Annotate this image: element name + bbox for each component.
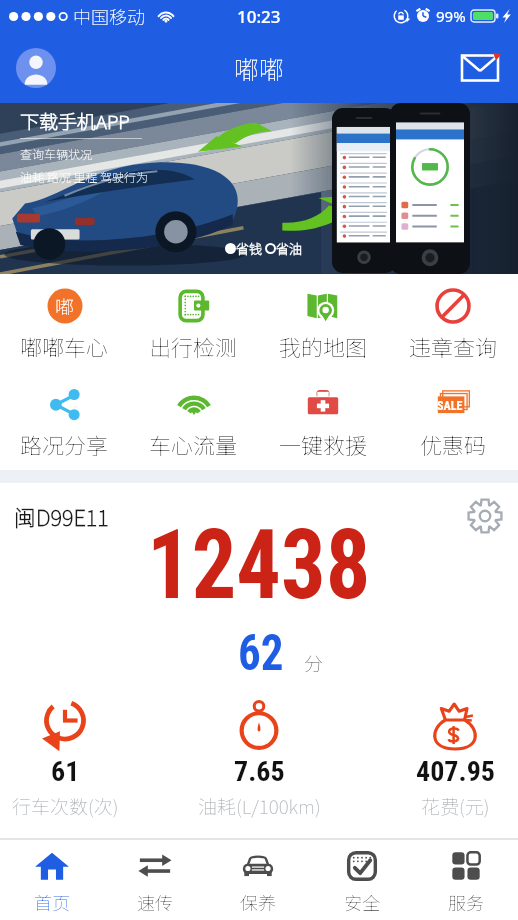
staticText: 服务 <box>448 889 484 915</box>
button[interactable]: 出行检测 <box>129 274 258 372</box>
staticText: 61 <box>51 755 80 788</box>
staticText: 62 <box>238 624 284 683</box>
button[interactable]: 首页 <box>0 840 103 920</box>
button[interactable]: 我的地图 <box>258 274 388 372</box>
button[interactable]: 路况分享 <box>0 372 129 470</box>
button[interactable]: Profile <box>16 48 56 88</box>
staticText: 查询车辆状况 <box>20 145 93 162</box>
staticText: SALE <box>437 399 463 413</box>
staticText: 7.65 <box>234 755 285 788</box>
staticText: 省钱 <box>236 239 263 258</box>
staticText: 违章查询 <box>409 330 498 362</box>
button[interactable]: 407.95 <box>375 697 518 820</box>
staticText: 嘟 <box>55 292 75 320</box>
button[interactable]: SALE <box>388 372 518 470</box>
button[interactable]: 嘟 <box>0 274 129 372</box>
button[interactable]: 安全 <box>310 840 414 920</box>
staticText: 安全 <box>344 889 380 915</box>
staticText: 12438 <box>147 508 371 622</box>
staticText: 99% <box>436 6 466 26</box>
button[interactable]: 7.65 <box>179 697 339 820</box>
staticText: 保养 <box>240 889 276 915</box>
staticText: 油耗 路况 里程 驾驶行为 <box>20 168 148 185</box>
staticText: 出行检测 <box>149 330 238 362</box>
button[interactable]: 速传 <box>103 840 206 920</box>
staticText: 闽D99E11 <box>14 500 109 532</box>
staticText: 油耗(L/100km) <box>198 792 321 820</box>
button[interactable]: Settings <box>464 495 506 537</box>
staticText: 嘟嘟 <box>234 50 285 86</box>
staticText: 车心流量 <box>149 428 238 460</box>
staticText: 一键救援 <box>279 428 368 460</box>
staticText: 优惠码 <box>420 428 487 460</box>
staticText: 分 <box>304 649 324 677</box>
staticText: 首页 <box>34 889 70 915</box>
button[interactable]: Messages <box>458 51 502 85</box>
button[interactable]: 服务 <box>414 840 518 920</box>
staticText: 下载手机APP <box>20 107 130 135</box>
staticText: 省油 <box>276 239 303 258</box>
staticText: 10:23 <box>237 5 281 28</box>
staticText: 中国移动 <box>73 3 145 29</box>
staticText: 我的地图 <box>279 330 368 362</box>
staticText: 速传 <box>137 889 173 915</box>
button[interactable]: 一键救援 <box>258 372 388 470</box>
button[interactable]: 车心流量 <box>129 372 258 470</box>
button[interactable]: 保养 <box>206 840 310 920</box>
staticText: 嘟嘟车心 <box>20 330 109 362</box>
staticText: 行车次数(次) <box>12 792 119 820</box>
staticText: 路况分享 <box>20 428 109 460</box>
staticText: 花费(元) <box>421 792 490 820</box>
button[interactable]: 违章查询 <box>388 274 518 372</box>
button[interactable]: 61 <box>0 697 145 820</box>
staticText: 407.95 <box>416 755 495 788</box>
